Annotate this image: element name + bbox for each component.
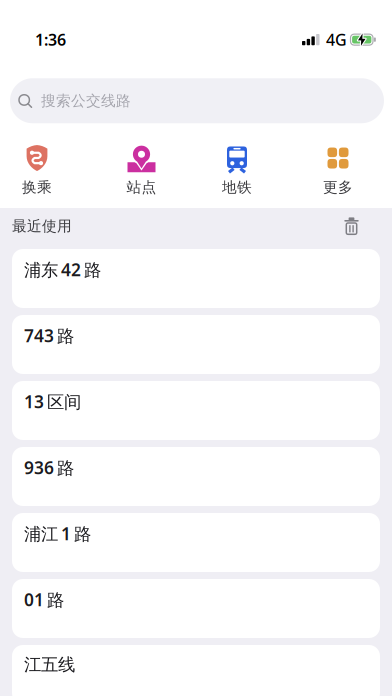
button[interactable]: 搜索公交线路: [10, 78, 384, 123]
staticText: 搜索公交线路: [41, 92, 131, 110]
staticText: 1:36: [35, 29, 66, 50]
staticText: 浦江 1 路: [24, 522, 91, 545]
staticText: 01 路: [24, 588, 64, 611]
staticText: 浦东 42 路: [24, 258, 101, 281]
button[interactable]: 换乘查询: [0, 144, 74, 196]
button[interactable]: 13 区间: [12, 381, 380, 440]
button[interactable]: 01 路: [12, 579, 380, 638]
button[interactable]: 更多功能: [301, 144, 375, 196]
staticText: 江五线: [24, 654, 75, 675]
staticText: 地铁: [222, 178, 252, 196]
staticText: 936 路: [24, 456, 74, 479]
button[interactable]: 江五线: [12, 645, 380, 696]
button[interactable]: 743 路: [12, 315, 380, 374]
button[interactable]: 站点查询: [104, 144, 178, 196]
staticText: 13 区间: [24, 390, 81, 413]
button[interactable]: 浦江 1 路: [12, 513, 380, 572]
button[interactable]: 936 路: [12, 447, 380, 506]
button[interactable]: 地铁查询: [200, 144, 274, 196]
staticText: 更多: [323, 178, 353, 196]
staticText: 最近使用: [12, 217, 72, 235]
staticText: 换乘: [22, 178, 52, 196]
button[interactable]: 清空最近使用: [344, 217, 359, 235]
staticText: 743 路: [24, 324, 74, 347]
staticText: 4G: [326, 29, 347, 50]
button[interactable]: 浦东 42 路: [12, 249, 380, 308]
staticText: 站点: [126, 178, 156, 196]
